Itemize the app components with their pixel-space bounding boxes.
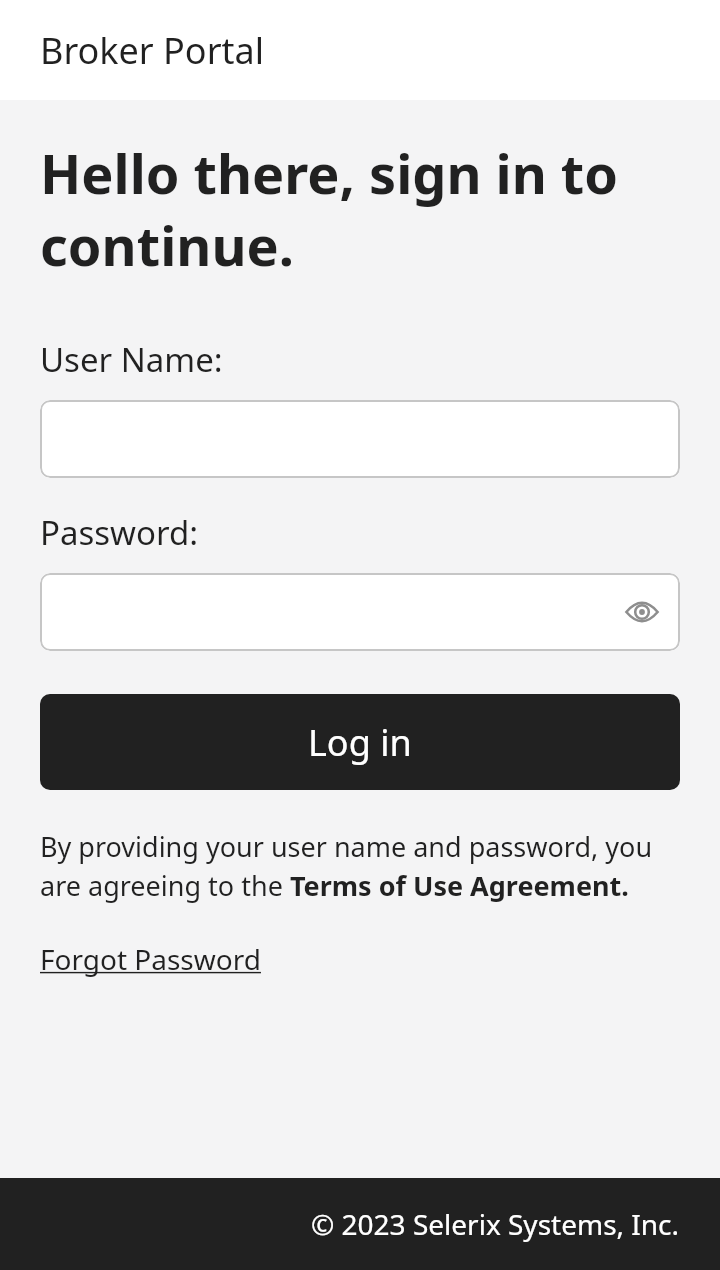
button[interactable]: Log in [40, 694, 680, 790]
button[interactable]: Forgot Password [40, 940, 261, 978]
button[interactable]: User Name input [40, 400, 680, 478]
button[interactable]: Password input [40, 573, 680, 651]
button[interactable]: Show password [624, 594, 660, 630]
staticText: User Name: [40, 337, 223, 382]
staticText: © 2023 Selerix Systems, Inc. [311, 1205, 680, 1243]
staticText: Log in [308, 718, 412, 767]
staticText: Forgot Password [40, 940, 261, 978]
staticText: By providing your user name and password… [40, 828, 680, 904]
staticText: Password: [40, 510, 199, 555]
staticText: Broker Portal [40, 26, 264, 75]
staticText: Hello there, sign in to continue. [40, 136, 680, 281]
